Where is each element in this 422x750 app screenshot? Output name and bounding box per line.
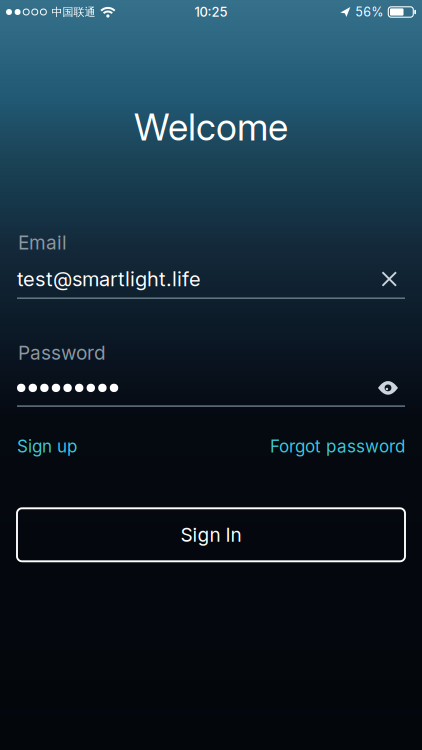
staticText: 中国联通 [51, 5, 95, 19]
staticText: Forgot password [270, 436, 405, 457]
button[interactable]: Sign up [17, 436, 77, 457]
button[interactable]: Clear text [378, 272, 405, 286]
staticText: Sign In [180, 523, 241, 546]
button[interactable]: Password [17, 376, 366, 399]
button[interactable]: Forgot password [270, 436, 405, 457]
staticText: Email [18, 231, 67, 254]
button[interactable]: Sign In [0, 508, 422, 561]
button[interactable]: test@smartlight.life [17, 266, 370, 292]
staticText: Password [18, 341, 106, 364]
button[interactable]: Show password [374, 381, 405, 394]
staticText: Sign up [17, 436, 77, 457]
staticText: 56% [355, 4, 383, 19]
staticText: Welcome [134, 105, 288, 149]
staticText: 10:25 [194, 4, 227, 20]
staticText: test@smartlight.life [17, 267, 201, 291]
